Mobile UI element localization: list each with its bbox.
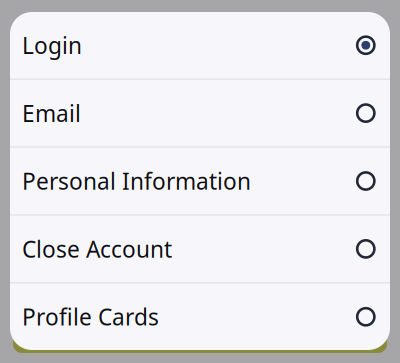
staticText: Personal Information <box>22 166 251 196</box>
staticText: Profile Cards <box>22 302 159 332</box>
staticText: Login <box>22 30 82 60</box>
button[interactable]: Login <box>10 12 390 78</box>
button[interactable]: Personal Information <box>10 148 390 214</box>
button[interactable]: Profile Cards <box>10 283 390 350</box>
staticText: Email <box>22 98 81 128</box>
button[interactable]: Email <box>10 80 390 146</box>
button[interactable]: Close Account <box>10 216 390 282</box>
staticText: Close Account <box>22 234 172 264</box>
